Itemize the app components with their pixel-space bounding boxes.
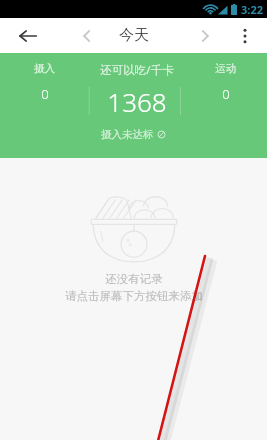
staticText: 0 (222, 85, 230, 103)
staticText: 0 (41, 85, 49, 103)
staticText: 3:22 (241, 2, 263, 17)
staticText: 摄入 (34, 62, 55, 75)
button[interactable]: 摄入未达标 (101, 128, 166, 141)
staticText: 还没有记录 (105, 272, 163, 286)
button[interactable]: Next day (190, 21, 220, 51)
button[interactable]: Previous day (72, 21, 102, 51)
staticText: 1368 (107, 84, 167, 119)
button[interactable]: Back (12, 20, 44, 52)
staticText: 请点击屏幕下方按钮来添加 (65, 289, 203, 303)
button[interactable]: 今天 (119, 26, 149, 45)
button[interactable]: More options (229, 20, 261, 52)
staticText: 还可以吃/千卡 (100, 62, 174, 78)
staticText: 运动 (215, 62, 236, 75)
button[interactable]: 还可以吃/千卡 (89, 62, 184, 119)
button[interactable]: 摄入 (0, 62, 89, 103)
staticText: 摄入未达标 (101, 128, 154, 141)
button[interactable]: 运动 (184, 62, 267, 103)
